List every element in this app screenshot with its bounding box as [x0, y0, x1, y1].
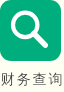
button[interactable]: 财务查询	[0, 0, 64, 92]
staticText: 财务查询	[1, 71, 64, 89]
